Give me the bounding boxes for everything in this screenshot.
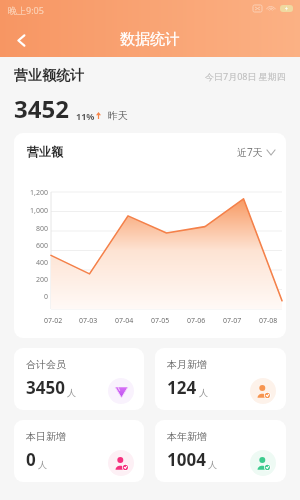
staticText: 400 — [35, 258, 48, 268]
staticText: 3450 — [26, 376, 65, 399]
staticText: 近7天 — [237, 145, 263, 159]
staticText: 人 — [38, 459, 47, 470]
staticText: 3452 — [14, 92, 69, 125]
staticText: 0 — [26, 448, 36, 471]
staticText: 800 — [35, 224, 48, 234]
staticText: 200 — [35, 275, 48, 285]
staticText: 1,000 — [30, 206, 48, 216]
staticText: 晚上9:05 — [8, 4, 44, 16]
staticText: 0 — [43, 292, 48, 302]
staticText: 人 — [199, 387, 208, 398]
staticText: 今日7月08日 星期四 — [205, 70, 286, 82]
button[interactable]: 本日新增 — [14, 420, 144, 482]
staticText: 07-07 — [223, 316, 242, 326]
staticText: 营业额统计 — [14, 67, 84, 85]
staticText: 07-04 — [115, 316, 134, 326]
staticText: 07-02 — [44, 316, 63, 326]
button[interactable]: 本月新增 — [155, 348, 286, 410]
staticText: 1,200 — [30, 188, 48, 198]
staticText: 营业额 — [27, 144, 63, 159]
button[interactable]: Back — [4, 23, 38, 57]
button[interactable]: 本年新增 — [155, 420, 286, 482]
staticText: 人 — [208, 459, 217, 470]
button[interactable]: 近7天 — [237, 145, 275, 159]
staticText: 1004 — [167, 448, 206, 471]
staticText: 合计会员 — [26, 358, 66, 371]
staticText: 本年新增 — [167, 430, 207, 443]
staticText: 07-08 — [259, 316, 278, 326]
staticText: 本日新增 — [26, 430, 66, 443]
staticText: 600 — [35, 241, 48, 251]
button[interactable]: 合计会员 — [14, 348, 144, 410]
staticText: 数据统计 — [120, 30, 180, 49]
staticText: 07-06 — [187, 316, 206, 326]
staticText: 本月新增 — [167, 358, 207, 371]
staticText: 124 — [167, 376, 197, 399]
staticText: 人 — [67, 387, 76, 398]
staticText: 11% — [76, 110, 95, 122]
staticText: 昨天 — [108, 109, 128, 122]
staticText: 07-03 — [79, 316, 98, 326]
staticText: 07-05 — [151, 316, 170, 326]
